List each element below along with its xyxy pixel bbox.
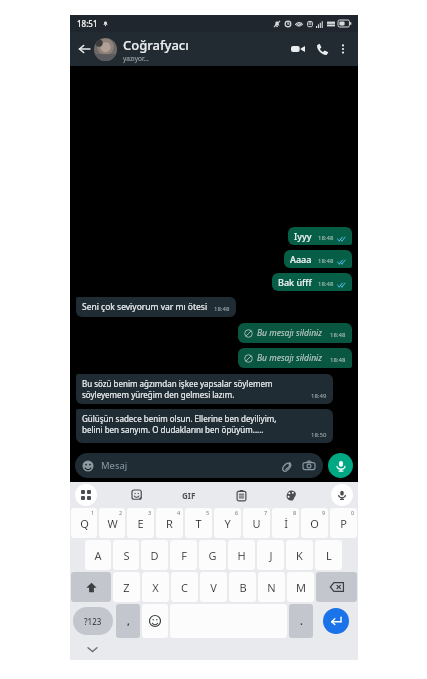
staticText: C	[181, 580, 188, 595]
staticText: 9	[322, 509, 326, 516]
button[interactable]: Voice message	[328, 453, 353, 478]
button[interactable]: Clipboard	[231, 485, 251, 505]
button[interactable]: GIF	[177, 483, 201, 507]
staticText: 3	[148, 509, 152, 516]
staticText: 18:48	[318, 257, 334, 265]
staticText: Q	[80, 516, 89, 531]
button[interactable]: C	[171, 572, 198, 602]
button[interactable]: N	[258, 572, 285, 602]
staticText: Bu mesajı sildiniz	[257, 327, 323, 339]
staticText: Mesaj	[101, 459, 128, 472]
staticText: B	[239, 580, 247, 595]
button[interactable]: Bu sözü benim ağzımdan işkee yapsalar sö…	[76, 374, 333, 404]
button[interactable]: Bak üfff	[272, 273, 352, 291]
staticText: İ	[284, 516, 288, 531]
button[interactable]: Camera	[302, 459, 316, 473]
button[interactable]: ,	[116, 604, 140, 638]
button[interactable]: K	[286, 540, 313, 570]
button[interactable]: Attach	[280, 459, 294, 473]
button[interactable]: Video call	[286, 37, 310, 61]
staticText: 18:48	[318, 234, 334, 242]
staticText: P	[340, 516, 347, 531]
button[interactable]: X	[142, 572, 169, 602]
staticText: 18:50	[311, 431, 327, 439]
staticText: 5	[206, 509, 210, 516]
staticText: F	[181, 548, 187, 563]
button[interactable]: R	[156, 508, 183, 538]
button[interactable]: Aaaa	[284, 250, 352, 268]
staticText: Bu sözü benim ağzımdan işkee yapsalar sö…	[82, 378, 273, 400]
staticText: Aaaa	[290, 253, 312, 265]
button[interactable]: M	[287, 572, 314, 602]
button[interactable]: G	[199, 540, 226, 570]
staticText: N	[267, 580, 276, 595]
button[interactable]: Enter	[315, 604, 357, 638]
button[interactable]: E	[127, 508, 154, 538]
button[interactable]: Shift	[71, 572, 111, 602]
button[interactable]: Mesaj	[75, 453, 323, 478]
button[interactable]: Themes	[281, 485, 301, 505]
staticText: D	[150, 548, 159, 563]
button[interactable]: Voice call	[310, 37, 334, 61]
button[interactable]: Profile photo	[94, 38, 117, 61]
button[interactable]: Iyyy	[288, 227, 352, 245]
button[interactable]: J	[257, 540, 284, 570]
staticText: 18:48	[318, 280, 334, 288]
staticText: Bu mesajı sildiniz	[257, 352, 323, 364]
staticText: 6	[235, 509, 239, 516]
button[interactable]: Back	[74, 39, 94, 59]
staticText: G	[208, 548, 217, 563]
button[interactable]: Seni çok seviyorum var mı ötesi	[76, 297, 236, 317]
button[interactable]: Gülüşün sadece benim olsun. Ellerine ben…	[76, 409, 333, 443]
button[interactable]: B	[229, 572, 256, 602]
staticText: J	[269, 548, 273, 563]
staticText: 7	[264, 509, 268, 516]
button[interactable]: H	[228, 540, 255, 570]
staticText: E	[137, 516, 144, 531]
other: Enter	[323, 608, 349, 634]
button[interactable]: U	[243, 508, 270, 538]
staticText: L	[326, 548, 332, 563]
staticText: Bak üfff	[278, 276, 312, 288]
button[interactable]: A	[85, 540, 111, 570]
staticText: T	[195, 516, 202, 531]
staticText: GIF	[182, 490, 196, 501]
staticText: V	[210, 580, 217, 595]
button[interactable]: Voice input	[331, 484, 353, 506]
staticText: U	[252, 516, 261, 531]
button[interactable]: Backspace	[316, 572, 357, 602]
staticText: Z	[123, 580, 130, 595]
button[interactable]: Stickers	[127, 485, 147, 505]
staticText: H	[237, 548, 246, 563]
staticText: 2	[119, 509, 123, 516]
button[interactable]: Bu mesajı sildiniz	[238, 323, 352, 343]
button[interactable]: İ	[272, 508, 299, 538]
button[interactable]: Y	[214, 508, 241, 538]
button[interactable]: Hide keyboard	[84, 641, 100, 657]
button[interactable]: O	[301, 508, 328, 538]
button[interactable]: Emoji	[142, 604, 168, 638]
button[interactable]: P	[330, 508, 357, 538]
button[interactable]: V	[200, 572, 227, 602]
button[interactable]: L	[315, 540, 342, 570]
button[interactable]: T	[185, 508, 212, 538]
staticText: S	[123, 548, 130, 563]
button[interactable]: S	[113, 540, 139, 570]
button[interactable]: Toolbox	[75, 484, 97, 506]
button[interactable]: ?123	[71, 604, 114, 638]
staticText: yazıyor...	[123, 54, 149, 63]
button[interactable]: Z	[113, 572, 140, 602]
button[interactable]: D	[141, 540, 168, 570]
button[interactable]: Bu mesajı sildiniz	[238, 348, 352, 368]
staticText: Coğrafyacı	[123, 36, 189, 54]
button[interactable]: Q	[71, 508, 97, 538]
button[interactable]: Coğrafyacı	[123, 36, 286, 63]
staticText: X	[152, 580, 159, 595]
staticText: 18:48	[214, 305, 230, 313]
button[interactable]: W	[99, 508, 125, 538]
staticText: Iyyy	[294, 230, 312, 242]
button[interactable]: More options	[334, 40, 352, 58]
button[interactable]: F	[170, 540, 197, 570]
button[interactable]: .	[289, 604, 313, 638]
